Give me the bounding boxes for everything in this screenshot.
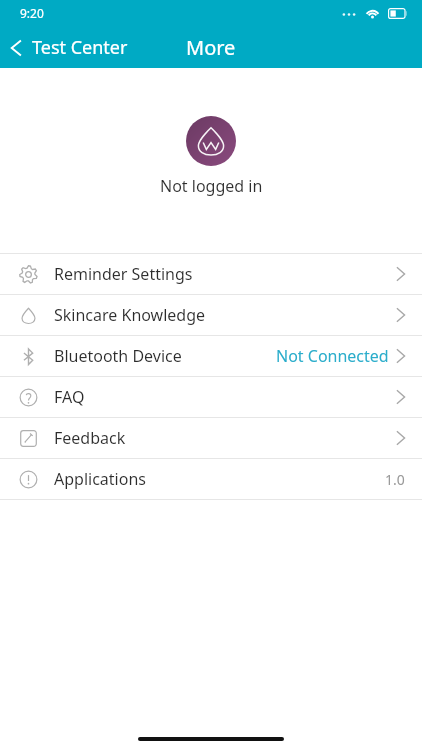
staticText: Applications [54, 468, 146, 490]
staticText: FAQ [54, 386, 85, 408]
staticText: Reminder Settings [54, 263, 193, 285]
button[interactable]: Test Center [0, 29, 138, 66]
button[interactable]: Reminder Settings [0, 254, 422, 294]
button[interactable]: Feedback [0, 418, 422, 458]
staticText: More [186, 34, 236, 61]
button[interactable]: Bluetooth Device [0, 336, 422, 376]
staticText: Not Connected [276, 345, 389, 367]
staticText: Test Center [32, 35, 128, 60]
staticText: 9:20 [20, 5, 44, 21]
staticText: 1.0 [385, 470, 405, 489]
button[interactable]: FAQ [0, 377, 422, 417]
staticText: Feedback [54, 427, 126, 449]
button[interactable]: Account [186, 116, 236, 166]
staticText: Not logged in [160, 175, 263, 197]
staticText: Bluetooth Device [54, 345, 182, 367]
staticText: Skincare Knowledge [54, 304, 206, 326]
button[interactable]: Skincare Knowledge [0, 295, 422, 335]
button[interactable]: Applications [0, 459, 422, 499]
